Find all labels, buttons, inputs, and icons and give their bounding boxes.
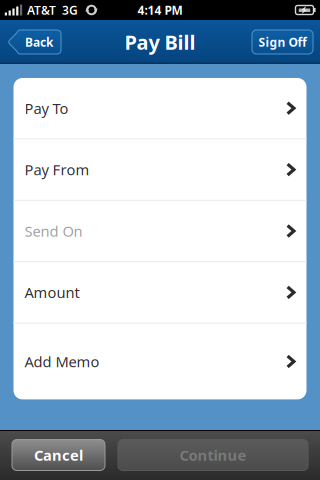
button[interactable]: Continue xyxy=(118,439,308,470)
staticText: Send On xyxy=(24,221,82,241)
button[interactable]: Sign Off xyxy=(252,30,313,54)
staticText: 4:14 PM xyxy=(137,2,182,18)
staticText: Cancel xyxy=(34,445,83,465)
button[interactable]: Amount xyxy=(13,262,306,323)
staticText: Sign Off xyxy=(258,34,306,50)
staticText: AT&T xyxy=(27,2,56,18)
staticText: Pay From xyxy=(24,160,89,179)
button[interactable]: Send On xyxy=(13,201,306,261)
staticText: Add Memo xyxy=(24,352,99,371)
button[interactable]: Cancel xyxy=(12,439,105,470)
staticText: Continue xyxy=(179,445,246,465)
button[interactable]: Back xyxy=(8,30,61,54)
staticText: 3G xyxy=(62,2,78,18)
staticText: Back xyxy=(25,34,53,50)
button[interactable]: Pay To xyxy=(13,78,306,138)
button[interactable]: Add Memo xyxy=(13,324,306,399)
staticText: Amount xyxy=(24,283,79,302)
button[interactable]: Pay From xyxy=(13,139,306,200)
staticText: Pay To xyxy=(24,98,68,118)
staticText: Pay Bill xyxy=(124,29,195,55)
